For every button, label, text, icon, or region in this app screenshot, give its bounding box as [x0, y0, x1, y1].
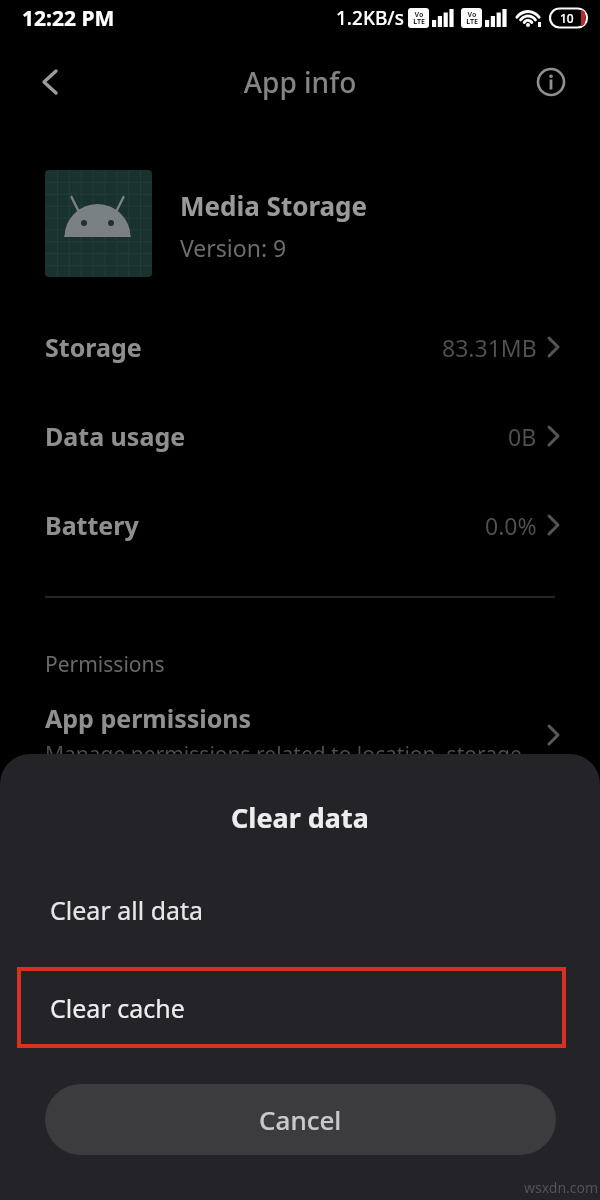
staticText: App info: [0, 63, 600, 101]
button[interactable]: Battery: [0, 495, 600, 555]
staticText: 1.2KB/s: [336, 5, 404, 31]
staticText: 0.0%: [485, 510, 537, 541]
staticText: Cancel: [259, 1102, 342, 1137]
staticText: 83.31MB: [442, 332, 537, 363]
staticText: Clear cache: [50, 991, 185, 1025]
staticText: Media Storage: [180, 188, 368, 223]
button[interactable]: [535, 66, 567, 98]
button[interactable]: App permissions: [0, 700, 600, 770]
staticText: Permissions: [45, 650, 165, 679]
staticText: Vo LTE: [413, 10, 425, 27]
staticText: Manage permissions related to location, …: [45, 740, 522, 769]
staticText: Battery: [45, 508, 139, 542]
button[interactable]: Clear all data: [0, 880, 600, 940]
button[interactable]: Clear cache: [17, 967, 566, 1048]
staticText: wsxdn.com: [524, 1178, 599, 1197]
staticText: Clear data: [231, 799, 369, 836]
staticText: Clear all data: [50, 893, 204, 927]
staticText: 12:22 PM: [22, 4, 115, 33]
button[interactable]: Cancel: [45, 1084, 556, 1155]
staticText: Vo LTE: [466, 10, 478, 27]
button[interactable]: Data usage: [0, 406, 600, 466]
staticText: Storage: [45, 330, 142, 364]
staticText: Data usage: [45, 419, 186, 453]
button[interactable]: Storage: [0, 317, 600, 377]
staticText: 10: [560, 10, 574, 26]
staticText: 0B: [508, 421, 537, 452]
staticText: App permissions: [45, 701, 252, 735]
staticText: Version: 9: [180, 232, 287, 263]
button[interactable]: [34, 66, 66, 98]
